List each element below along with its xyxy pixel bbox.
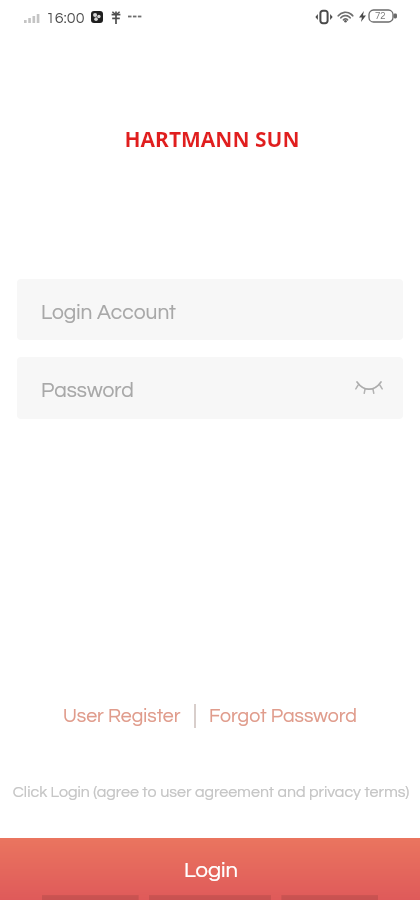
staticText: HARTMANN SUN — [2, 125, 420, 154]
button[interactable]: User Register — [63, 706, 181, 726]
button[interactable]: Forgot Password — [209, 706, 357, 726]
button[interactable]: Password — [17, 357, 403, 419]
staticText: Password — [41, 380, 134, 402]
button[interactable]: Login Account — [17, 279, 403, 340]
staticText: Login — [184, 859, 238, 882]
staticText: 16:00 — [46, 10, 85, 26]
button[interactable]: Show password — [352, 368, 386, 402]
staticText: Click Login (agree to user agreement and… — [1, 784, 420, 800]
button[interactable]: Login — [0, 838, 420, 900]
staticText: 72 — [375, 11, 386, 21]
staticText: Login Account — [41, 302, 176, 324]
